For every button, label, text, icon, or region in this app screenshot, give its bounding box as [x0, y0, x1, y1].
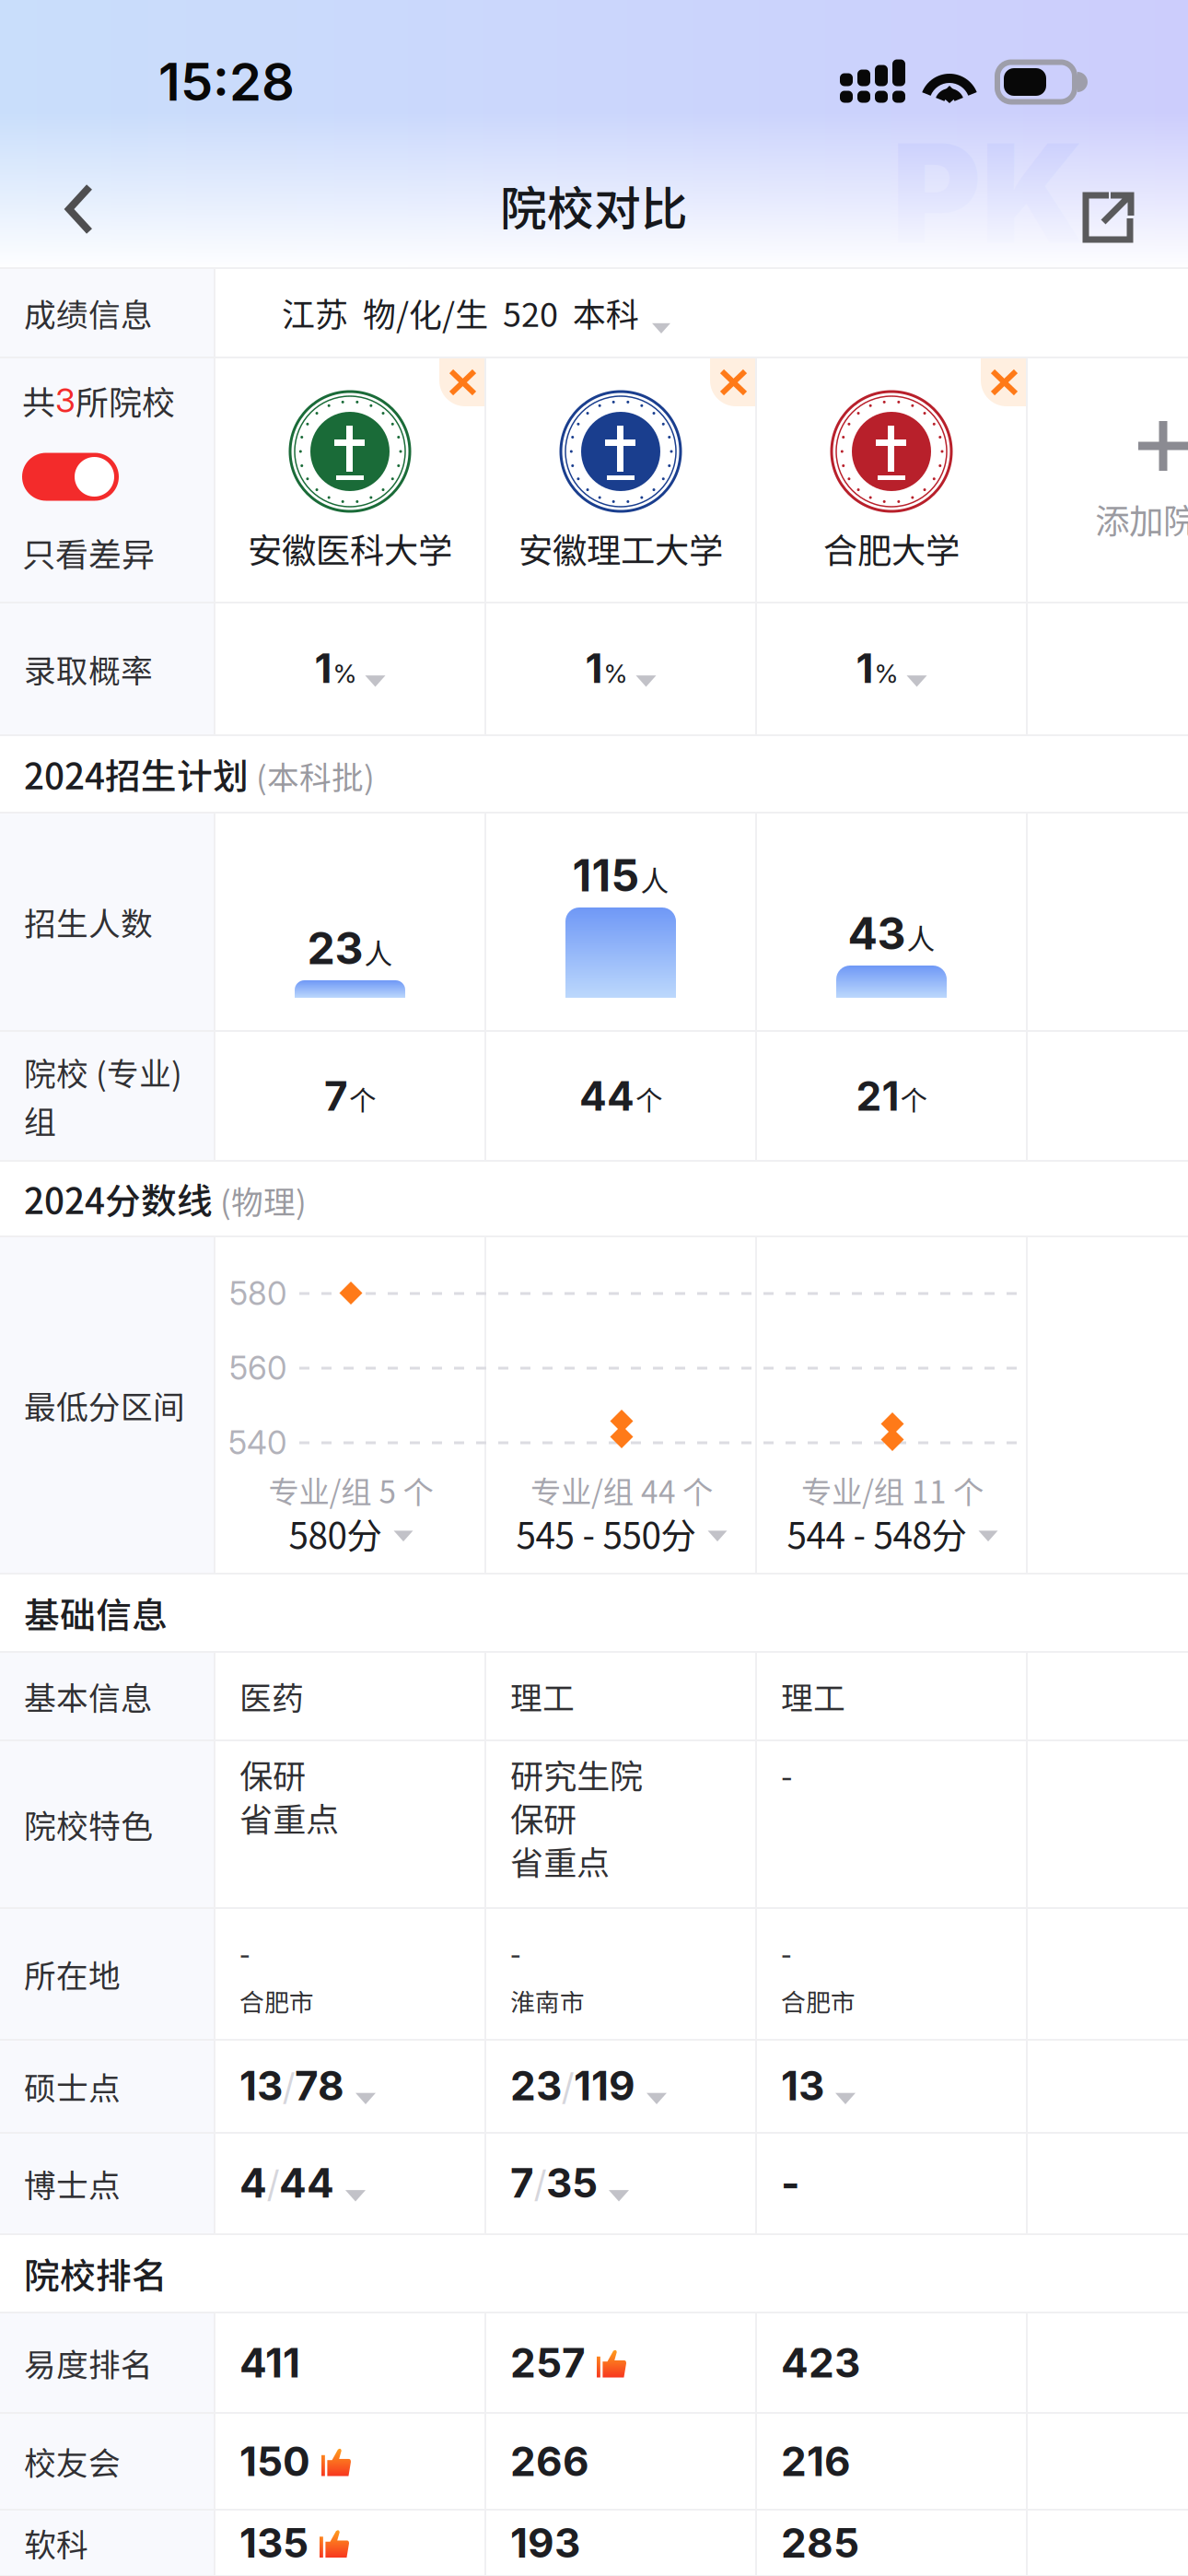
staticText: 285 — [781, 2518, 859, 2567]
staticText: 组 — [24, 1097, 56, 1143]
staticText: - — [781, 2159, 800, 2208]
button[interactable]: 分享 — [1050, 170, 1166, 265]
staticText: 1 — [856, 644, 874, 693]
staticText: 13 — [239, 2061, 283, 2110]
staticText: 11 个 — [912, 1468, 984, 1512]
staticText: / — [267, 2162, 279, 2206]
staticText: 7 — [510, 2158, 534, 2207]
staticText: 23 — [510, 2061, 562, 2110]
staticText: PK — [891, 111, 1084, 276]
staticText: 专业/组 — [801, 1468, 904, 1512]
staticText: 人 — [641, 858, 669, 899]
staticText: - — [781, 1929, 792, 1974]
staticText: % — [604, 658, 628, 689]
button[interactable]: 返回 — [22, 169, 120, 266]
staticText: 150 — [239, 2437, 310, 2486]
staticText: 115 — [572, 848, 640, 902]
staticText: 人 — [364, 931, 393, 972]
staticText: 2024分数线 — [24, 1173, 213, 1224]
staticText: / — [534, 2162, 546, 2206]
staticText: 安徽理工大学 — [518, 523, 723, 573]
staticText: 所在地 — [24, 1951, 121, 1997]
staticText: 博士点 — [24, 2160, 121, 2207]
staticText: 院校对比 — [500, 172, 688, 239]
staticText: 只看差异 — [22, 528, 155, 576]
staticText: 545 - 550分 — [516, 1508, 697, 1559]
staticText: 193 — [510, 2518, 580, 2567]
staticText: 理工 — [510, 1673, 575, 1719]
staticText: 43 — [848, 906, 906, 960]
staticText: 1 — [314, 644, 332, 693]
staticText: 13 — [781, 2061, 824, 2110]
staticText: 合肥市 — [781, 1983, 856, 2019]
staticText: 15:28 — [158, 51, 295, 113]
staticText: 合肥大学 — [823, 523, 960, 573]
staticText: 544 - 548分 — [787, 1508, 967, 1559]
staticText: 招生人数 — [24, 899, 153, 945]
staticText: 基础信息 — [24, 1587, 168, 1639]
staticText: 44 个 — [641, 1468, 713, 1512]
staticText: % — [333, 658, 357, 689]
staticText: 基本信息 — [24, 1673, 153, 1719]
staticText: 411 — [239, 2338, 300, 2387]
staticText: 淮南市 — [510, 1983, 585, 2019]
staticText: 省重点 — [239, 1793, 339, 1841]
staticText: 266 — [510, 2437, 589, 2486]
staticText: 院校特色 — [24, 1801, 153, 1847]
staticText: 添加院校 — [1095, 494, 1188, 544]
staticText: 2024招生计划 — [24, 748, 249, 800]
button[interactable]: 移除 安徽医科大学 — [439, 358, 484, 406]
button[interactable]: 江苏 物/化/生 520 本科 — [215, 269, 1188, 357]
staticText: 所院校 — [76, 376, 175, 424]
button[interactable]: 移除 合肥大学 — [981, 358, 1026, 406]
staticText: 35 — [546, 2158, 598, 2207]
staticText: - — [510, 1929, 521, 1974]
staticText: 580分 — [289, 1508, 383, 1559]
staticText: 423 — [781, 2338, 860, 2387]
staticText: - — [239, 1929, 250, 1974]
staticText: 共 — [22, 376, 55, 424]
staticText: 保研 — [510, 1793, 577, 1841]
staticText: 个 — [900, 1079, 927, 1118]
staticText: / — [283, 2065, 295, 2109]
staticText: 硕士点 — [24, 2063, 121, 2109]
staticText: 119 — [574, 2061, 635, 2110]
staticText: 人 — [907, 917, 935, 957]
button[interactable]: 添加院校 — [1028, 358, 1188, 602]
staticText: 7 — [324, 1071, 348, 1120]
staticText: 135 — [239, 2518, 309, 2567]
staticText: 23 — [307, 921, 363, 975]
staticText: 21 — [856, 1071, 899, 1120]
staticText: 录取概率 — [24, 646, 153, 692]
staticText: (本科批) — [249, 752, 375, 799]
staticText: 江苏 物/化/生 520 本科 — [282, 288, 639, 336]
staticText: 医药 — [239, 1673, 304, 1719]
staticText: 580 — [229, 1274, 286, 1313]
staticText: 3 — [55, 380, 76, 420]
staticText: 个 — [349, 1079, 376, 1118]
staticText: 校友会 — [24, 2438, 121, 2484]
staticText: 540 — [228, 1423, 286, 1462]
staticText: % — [874, 658, 898, 689]
staticText: 研究生院 — [510, 1750, 643, 1798]
staticText: 院校排名 — [24, 2248, 168, 2299]
staticText: - — [781, 1750, 792, 1798]
staticText: 安徽医科大学 — [248, 523, 452, 573]
staticText: 78 — [295, 2061, 344, 2110]
button[interactable]: 只看差异 — [22, 453, 119, 501]
staticText: 成绩信息 — [24, 290, 153, 336]
staticText: 专业/组 — [268, 1468, 372, 1512]
staticText: 4 — [239, 2158, 267, 2207]
button[interactable]: 移除 安徽理工大学 — [710, 358, 755, 406]
staticText: 院校 (专业) — [24, 1049, 182, 1095]
staticText: / — [562, 2065, 574, 2109]
staticText: 216 — [781, 2437, 851, 2486]
staticText: 软科 — [24, 2520, 88, 2566]
staticText: 560 — [229, 1349, 286, 1387]
staticText: 257 — [510, 2338, 586, 2387]
staticText: 保研 — [239, 1750, 306, 1798]
staticText: 省重点 — [510, 1837, 610, 1885]
staticText: 理工 — [781, 1673, 845, 1719]
staticText: 个 — [635, 1079, 662, 1118]
staticText: 易度排名 — [24, 2340, 153, 2386]
